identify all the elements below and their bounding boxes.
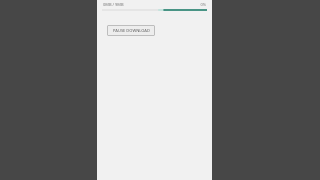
- staticText: 0%: [200, 2, 206, 7]
- staticText: 0MB / 9MB: [103, 2, 124, 7]
- staticText: PAUSE DOWNLOAD: [113, 28, 150, 33]
- button[interactable]: PAUSE DOWNLOAD: [107, 25, 155, 36]
